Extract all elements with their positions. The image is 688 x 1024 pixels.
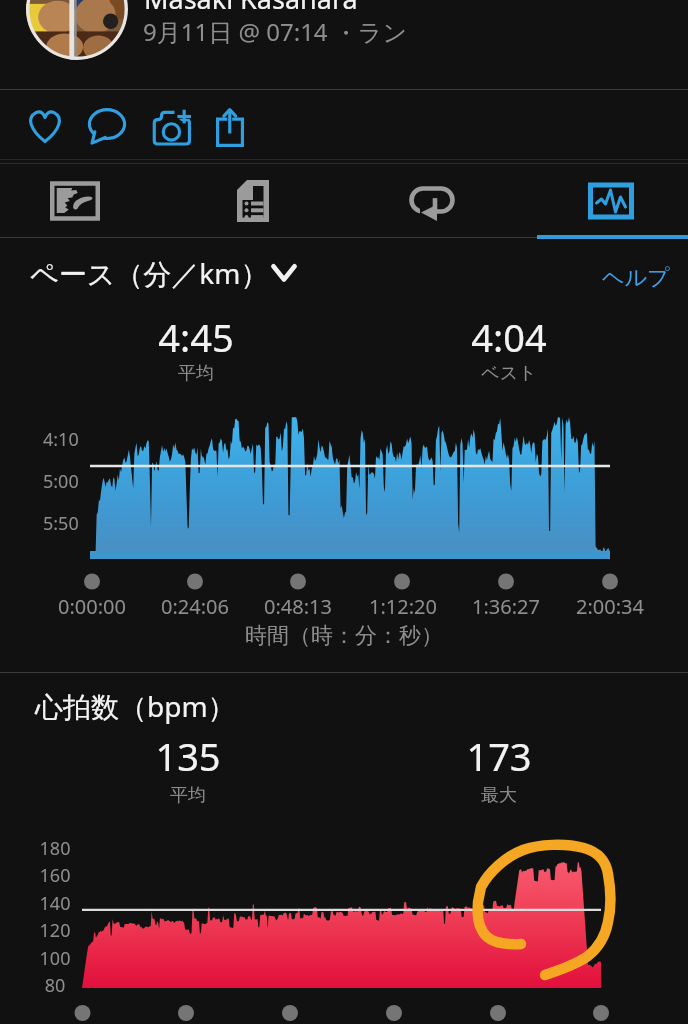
staticText: ヘルプ [602,264,670,292]
button[interactable]: Details [169,165,337,237]
button[interactable]: Analysis [527,165,688,237]
staticText: 80 [15,973,95,998]
button[interactable]: ペース（分／km） [30,254,297,292]
button[interactable]: Add photo [141,96,197,152]
staticText: 173 [339,730,659,782]
button[interactable]: Comment [79,96,135,152]
staticText: 平均 [36,362,356,385]
staticText: 平均 [28,784,348,807]
staticText: 135 [28,730,348,782]
staticText: 120 [15,918,95,943]
staticText: 時間（時：分：秒） [184,622,504,650]
staticText: 1:36:27 [446,593,566,620]
button[interactable]: Laps [348,165,516,237]
staticText: 0:24:06 [135,593,255,620]
button[interactable]: ヘルプ [602,264,670,292]
staticText: 0:00:00 [32,593,152,620]
staticText: 180 [15,836,95,861]
staticText: 1:12:20 [343,593,463,620]
staticText: ペース（分／km） [30,254,269,292]
staticText: 心拍数（bpm） [35,687,236,725]
button[interactable]: Like [17,96,73,152]
staticText: 0:48:13 [238,593,358,620]
button[interactable]: Share [202,96,258,152]
staticText: 2:00:34 [550,593,670,620]
staticText: ベスト [349,362,669,385]
staticText: 4:04 [349,311,669,363]
button[interactable]: Profile photo [26,0,128,60]
staticText: 5:00 [43,469,79,494]
staticText: Masaki Kasahara [144,0,358,17]
staticText: 4:45 [36,311,356,363]
staticText: 160 [15,863,95,888]
staticText: 9月11日 @ 07:14 ・ラン [143,15,407,48]
staticText: 5:50 [43,511,79,536]
button[interactable]: Map [0,165,159,237]
staticText: 4:10 [43,427,79,452]
staticText: 140 [15,891,95,916]
staticText: 100 [15,946,95,971]
staticText: 最大 [339,784,659,807]
